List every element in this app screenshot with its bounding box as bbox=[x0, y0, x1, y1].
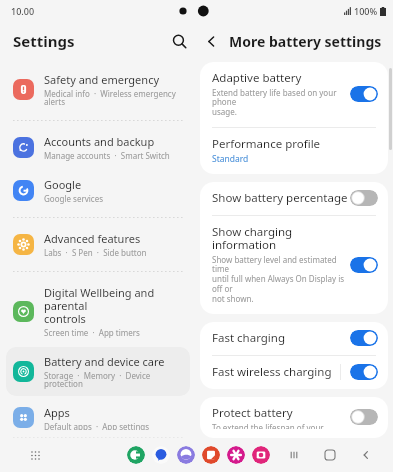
button[interactable]: Back bbox=[353, 442, 379, 468]
button[interactable]: Toggle on bbox=[350, 364, 378, 380]
button[interactable]: App 6 bbox=[252, 446, 270, 464]
staticText: Show charging information bbox=[212, 224, 350, 253]
staticText: Manage accounts · Smart Switch bbox=[44, 150, 170, 161]
button[interactable]: Toggle off bbox=[350, 190, 378, 206]
button[interactable]: Toggle on bbox=[350, 86, 378, 102]
button[interactable]: Show battery percentage bbox=[200, 182, 388, 215]
button[interactable]: Back bbox=[196, 26, 226, 56]
staticText: Google bbox=[44, 177, 82, 192]
staticText: Safety and emergency bbox=[44, 72, 160, 87]
button[interactable]: Search bbox=[162, 24, 196, 58]
staticText: More battery settings bbox=[229, 32, 382, 51]
staticText: Performance profile bbox=[212, 136, 321, 152]
button[interactable]: App 4 bbox=[202, 446, 220, 464]
button[interactable]: App 3 bbox=[177, 446, 195, 464]
button[interactable]: Advanced features bbox=[6, 224, 190, 265]
button[interactable]: Home bbox=[317, 442, 343, 468]
staticText: Fast wireless charging bbox=[212, 364, 332, 380]
staticText: 100% bbox=[354, 5, 378, 17]
button[interactable]: Toggle on bbox=[350, 257, 378, 273]
staticText: Apps bbox=[44, 405, 70, 420]
button[interactable]: App 1 bbox=[127, 446, 145, 464]
button[interactable]: Adaptive battery bbox=[200, 62, 388, 127]
staticText: Extend battery life based on your phone … bbox=[212, 87, 350, 118]
staticText: Google services bbox=[44, 193, 104, 204]
button[interactable]: Fast charging bbox=[200, 322, 388, 355]
staticText: Labs · S Pen · Side button bbox=[44, 247, 147, 258]
button[interactable]: Protect battery bbox=[200, 397, 388, 438]
staticText: Show battery percentage bbox=[212, 190, 348, 206]
button[interactable]: Performance profile bbox=[200, 128, 388, 174]
staticText: Default apps · App settings bbox=[44, 421, 150, 430]
button[interactable]: Digital Wellbeing and parental controls bbox=[6, 278, 190, 345]
button[interactable]: All apps bbox=[24, 444, 46, 466]
button[interactable]: App 5 bbox=[227, 446, 245, 464]
button[interactable]: Toggle on bbox=[350, 330, 378, 346]
staticText: Adaptive battery bbox=[212, 70, 302, 86]
button[interactable]: Google bbox=[6, 170, 190, 211]
button[interactable]: Recents bbox=[281, 442, 307, 468]
button[interactable]: Apps bbox=[6, 398, 190, 437]
staticText: To extend the lifespan of your battery, … bbox=[212, 422, 350, 429]
button[interactable]: Accounts and backup bbox=[6, 127, 190, 168]
button[interactable]: Toggle off bbox=[350, 409, 378, 425]
staticText: Protect battery bbox=[212, 405, 293, 421]
staticText: Screen time · App timers bbox=[44, 327, 140, 338]
staticText: Battery and device care bbox=[44, 354, 165, 369]
staticText: Digital Wellbeing and parental controls bbox=[44, 285, 184, 326]
button[interactable]: Battery and device care bbox=[6, 347, 190, 396]
button[interactable]: Fast wireless charging bbox=[200, 356, 388, 389]
button[interactable]: App 2 bbox=[152, 446, 170, 464]
staticText: Show battery level and estimated time un… bbox=[212, 254, 350, 305]
button[interactable]: Safety and emergency bbox=[6, 65, 190, 114]
staticText: Storage · Memory · Device protection bbox=[44, 370, 184, 389]
staticText: Fast charging bbox=[212, 330, 286, 346]
staticText: Medical info · Wireless emergency alerts bbox=[44, 88, 184, 107]
staticText: Standard bbox=[212, 153, 249, 165]
staticText: Advanced features bbox=[44, 231, 141, 246]
staticText: Settings bbox=[13, 31, 75, 51]
button[interactable]: Show charging information bbox=[200, 216, 388, 314]
staticText: Accounts and backup bbox=[44, 134, 155, 149]
staticText: 10.00 bbox=[11, 5, 35, 17]
